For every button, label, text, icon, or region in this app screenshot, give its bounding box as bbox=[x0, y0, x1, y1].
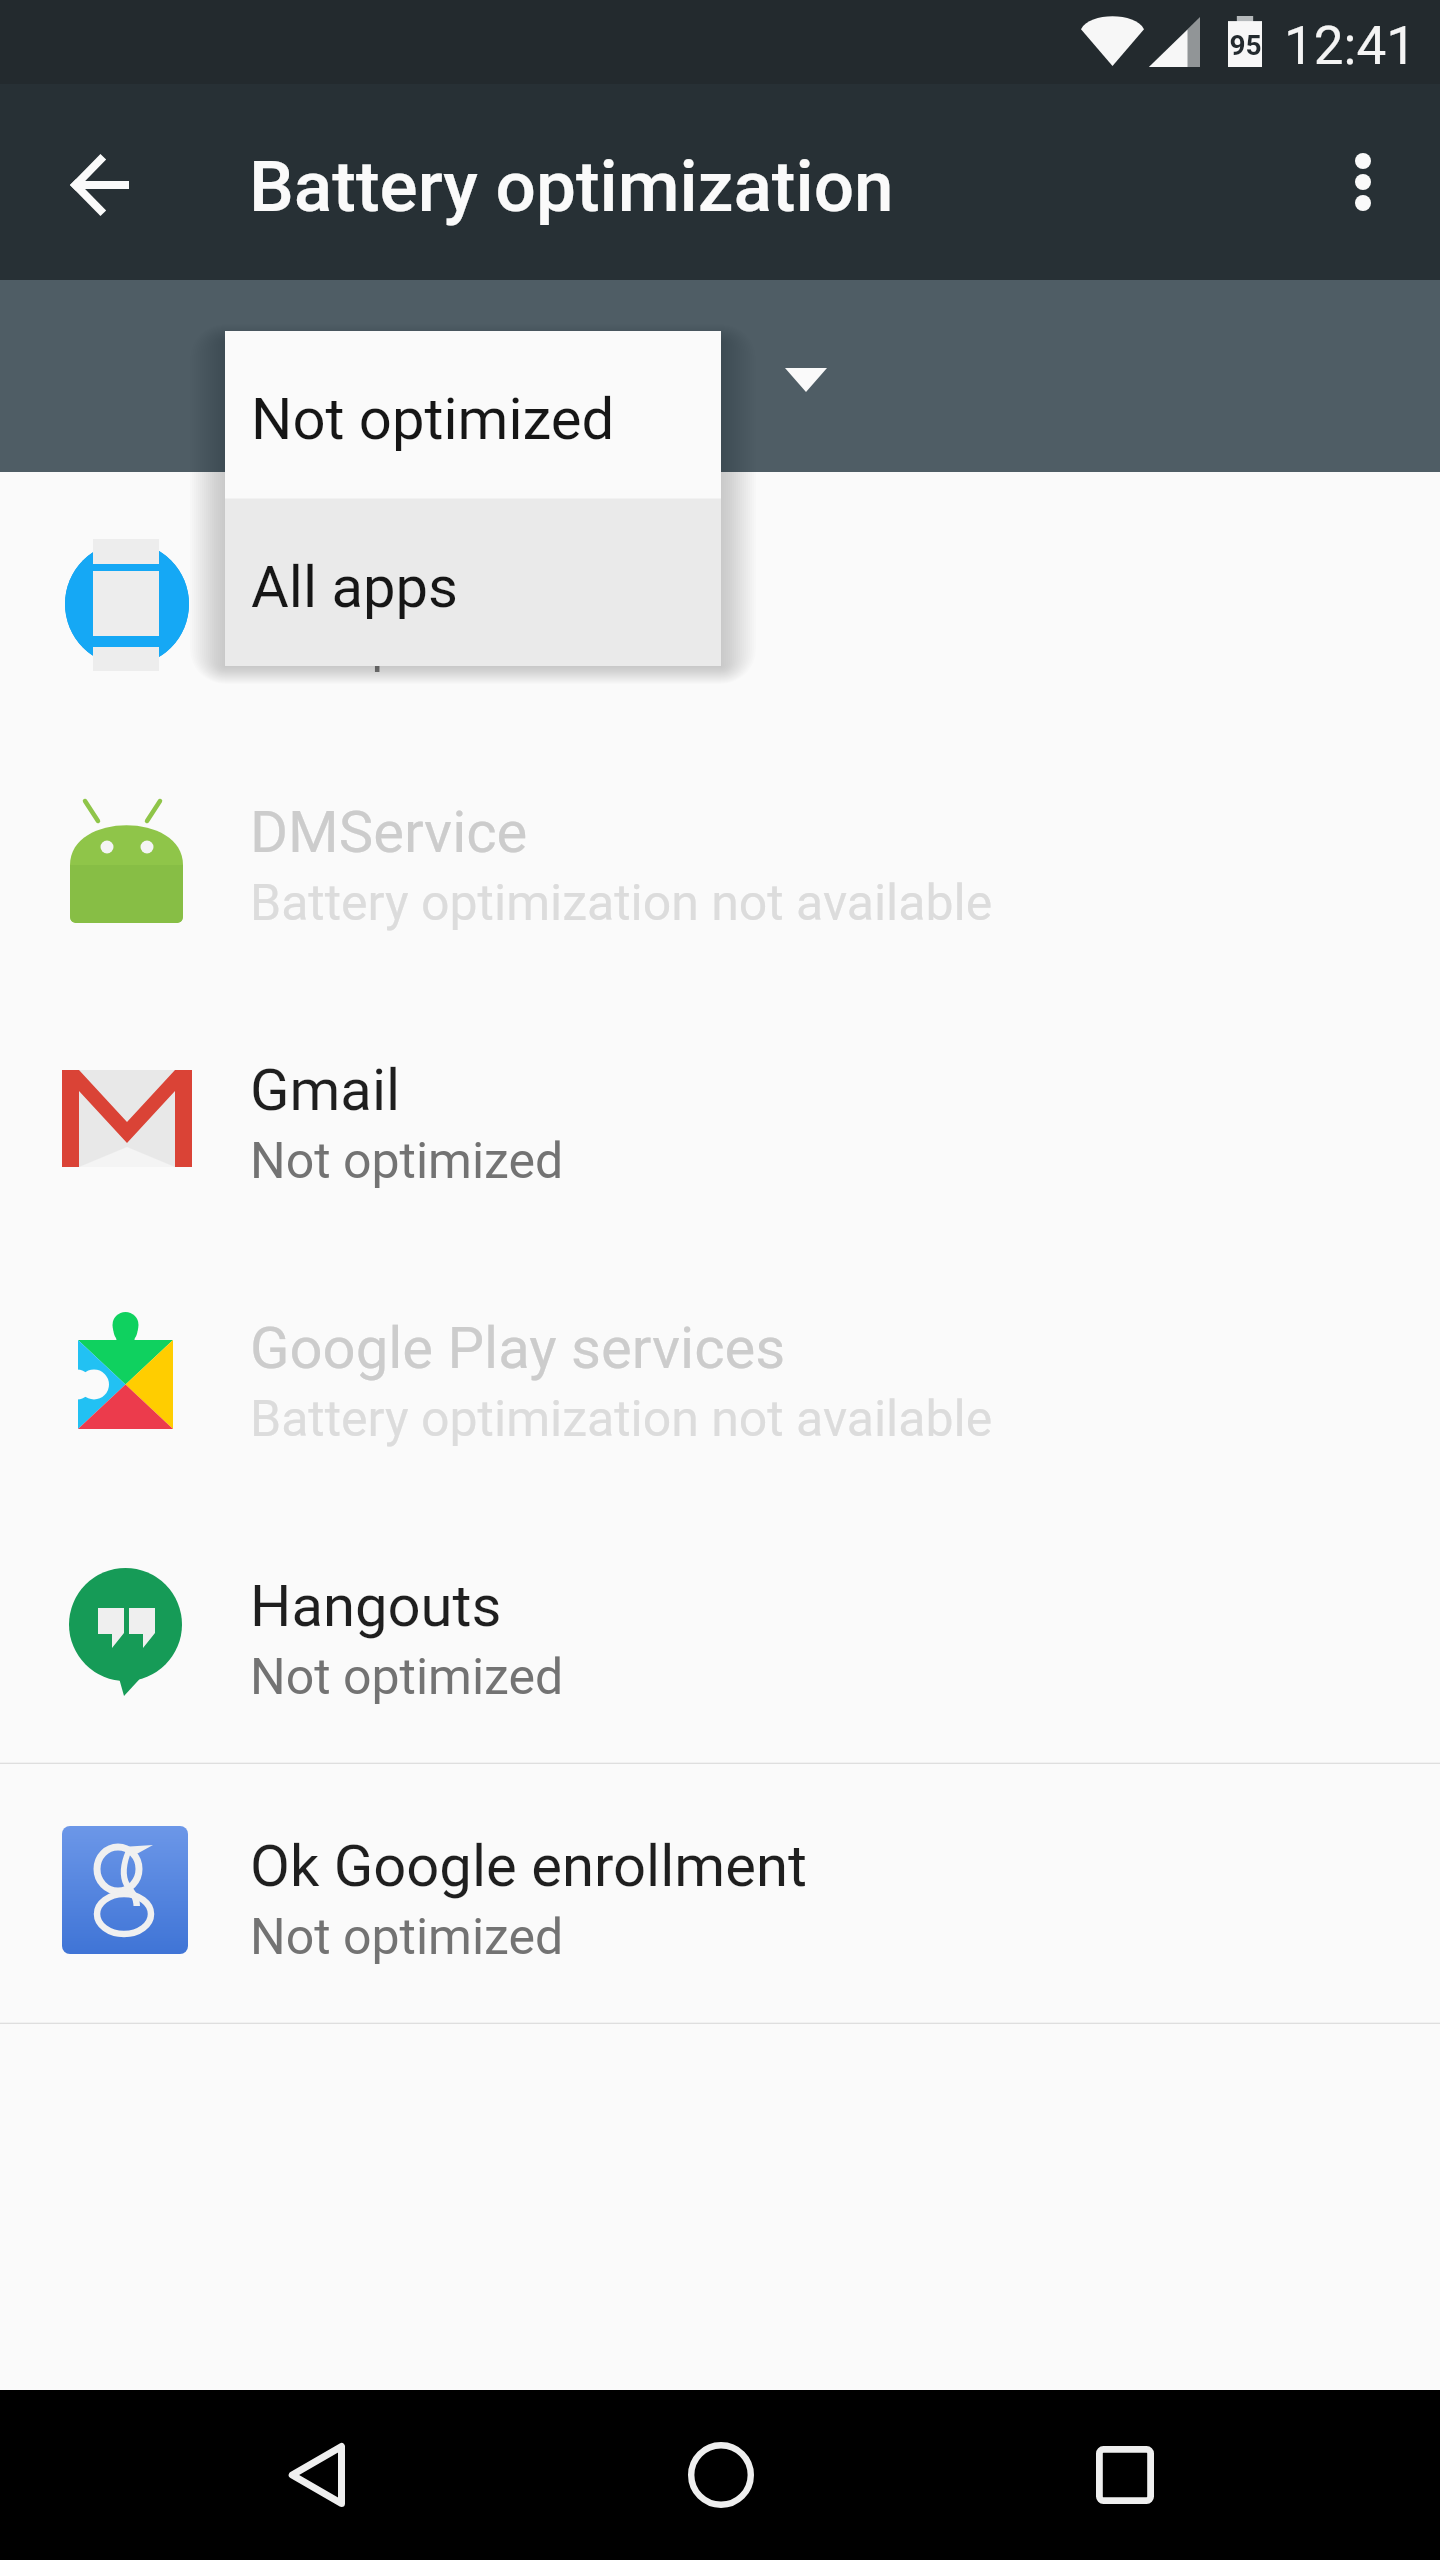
button[interactable]: Recent apps bbox=[997, 2390, 1253, 2560]
staticText: Not optimized bbox=[250, 1908, 564, 1967]
staticText: 95 bbox=[1229, 29, 1262, 62]
staticText: Battery optimization bbox=[249, 145, 894, 228]
button[interactable]: DMService bbox=[0, 730, 1440, 988]
staticText: Battery optimization not available bbox=[250, 1390, 993, 1449]
staticText: DMService bbox=[250, 798, 528, 866]
button[interactable]: Home bbox=[593, 2390, 849, 2560]
staticText: Google Play services bbox=[250, 1314, 786, 1382]
button[interactable]: Gmail bbox=[0, 988, 1440, 1246]
button[interactable] bbox=[0, 280, 1440, 472]
button[interactable]: Android Wear bbox=[0, 472, 1440, 730]
staticText: Not optimized bbox=[250, 1132, 564, 1191]
staticText: Not optimized bbox=[250, 616, 564, 675]
button[interactable]: Ok Google enrollment bbox=[0, 1764, 1440, 2022]
staticText: Gmail bbox=[250, 1056, 401, 1124]
staticText: Ok Google enrollment bbox=[250, 1832, 807, 1900]
button[interactable]: Navigate up bbox=[0, 84, 196, 280]
button[interactable]: All apps bbox=[225, 499, 721, 666]
button[interactable]: More options bbox=[1296, 84, 1440, 280]
staticText: Battery optimization not available bbox=[250, 874, 993, 933]
staticText: Not optimized bbox=[251, 385, 615, 453]
staticText: Android Wear bbox=[250, 540, 599, 608]
staticText: All apps bbox=[251, 553, 459, 621]
button[interactable]: Hangouts bbox=[0, 1504, 1440, 1762]
staticText: Not optimized bbox=[250, 1648, 564, 1707]
staticText: 12:41 bbox=[1284, 15, 1416, 77]
button[interactable]: Back bbox=[188, 2390, 444, 2560]
button[interactable]: Google Play services bbox=[0, 1246, 1440, 1504]
staticText: Hangouts bbox=[250, 1572, 502, 1640]
button[interactable]: Not optimized bbox=[225, 331, 721, 498]
